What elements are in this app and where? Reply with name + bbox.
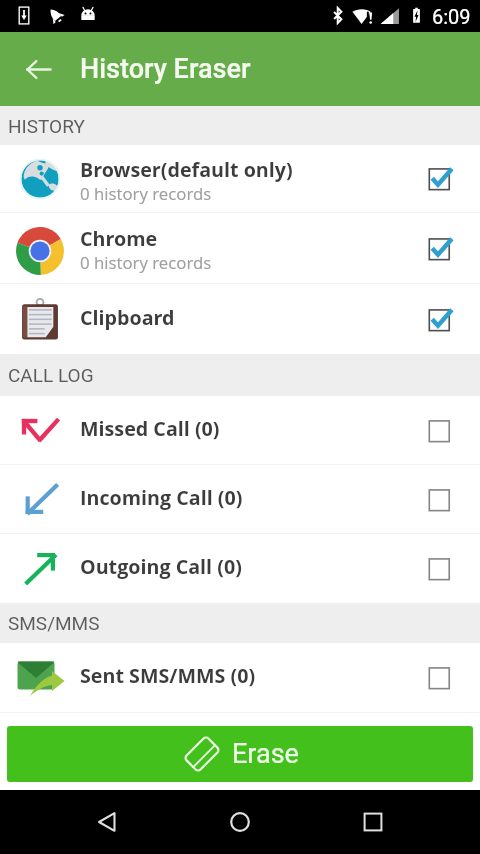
staticText: 0 history records — [80, 251, 212, 274]
staticText: SMS/MMS — [8, 612, 100, 634]
button[interactable]: Incoming Call (0) — [0, 465, 480, 533]
staticText: Clipboard — [80, 304, 175, 331]
button[interactable]: Back — [14, 45, 62, 93]
button[interactable]: Missed Call (0) — [0, 396, 480, 464]
staticText: 0 history records — [80, 182, 212, 205]
button[interactable]: Chrome — [0, 213, 480, 283]
button[interactable]: Home — [214, 796, 266, 848]
button[interactable]: Erase — [7, 726, 473, 782]
button[interactable]: Recents — [347, 796, 399, 848]
staticText: 6:09 — [432, 5, 471, 28]
staticText: History Eraser — [80, 53, 251, 85]
button[interactable]: Browser(default only) — [0, 145, 480, 212]
staticText: Chrome — [80, 225, 158, 252]
button[interactable]: Sent SMS/MMS (0) — [0, 643, 480, 712]
button[interactable]: Clipboard — [0, 284, 480, 354]
staticText: Missed Call (0) — [80, 415, 220, 442]
staticText: Incoming Call (0) — [80, 484, 243, 511]
button[interactable]: Back — [81, 796, 133, 848]
staticText: CALL LOG — [8, 364, 94, 386]
staticText: Browser(default only) — [80, 156, 293, 183]
button[interactable]: Outgoing Call (0) — [0, 534, 480, 603]
staticText: HISTORY — [8, 115, 85, 137]
staticText: Erase — [232, 738, 299, 770]
staticText: Sent SMS/MMS (0) — [80, 662, 256, 689]
staticText: Outgoing Call (0) — [80, 553, 242, 580]
